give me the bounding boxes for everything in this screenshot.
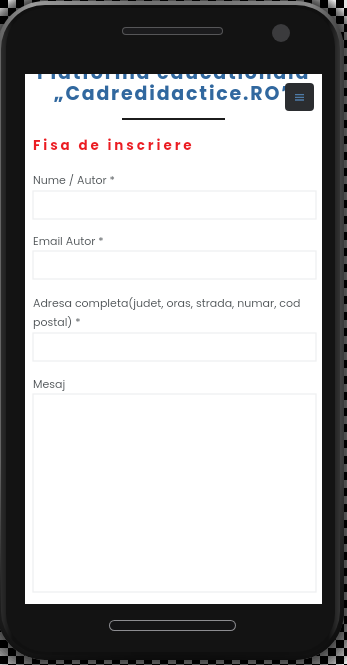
staticText: „Cadredidactice.RO” (25, 80, 322, 107)
staticText: Email Autor * (33, 233, 316, 248)
staticText: Mesaj (33, 376, 316, 391)
staticText: Platforma educationala (25, 74, 322, 86)
staticText: Adresa completa(judet, oras, strada, num… (33, 295, 316, 330)
staticText: Fisa de inscriere (33, 136, 195, 155)
staticText: Nume / Autor * (33, 172, 316, 187)
button[interactable]: Open navigation menu (285, 83, 314, 111)
